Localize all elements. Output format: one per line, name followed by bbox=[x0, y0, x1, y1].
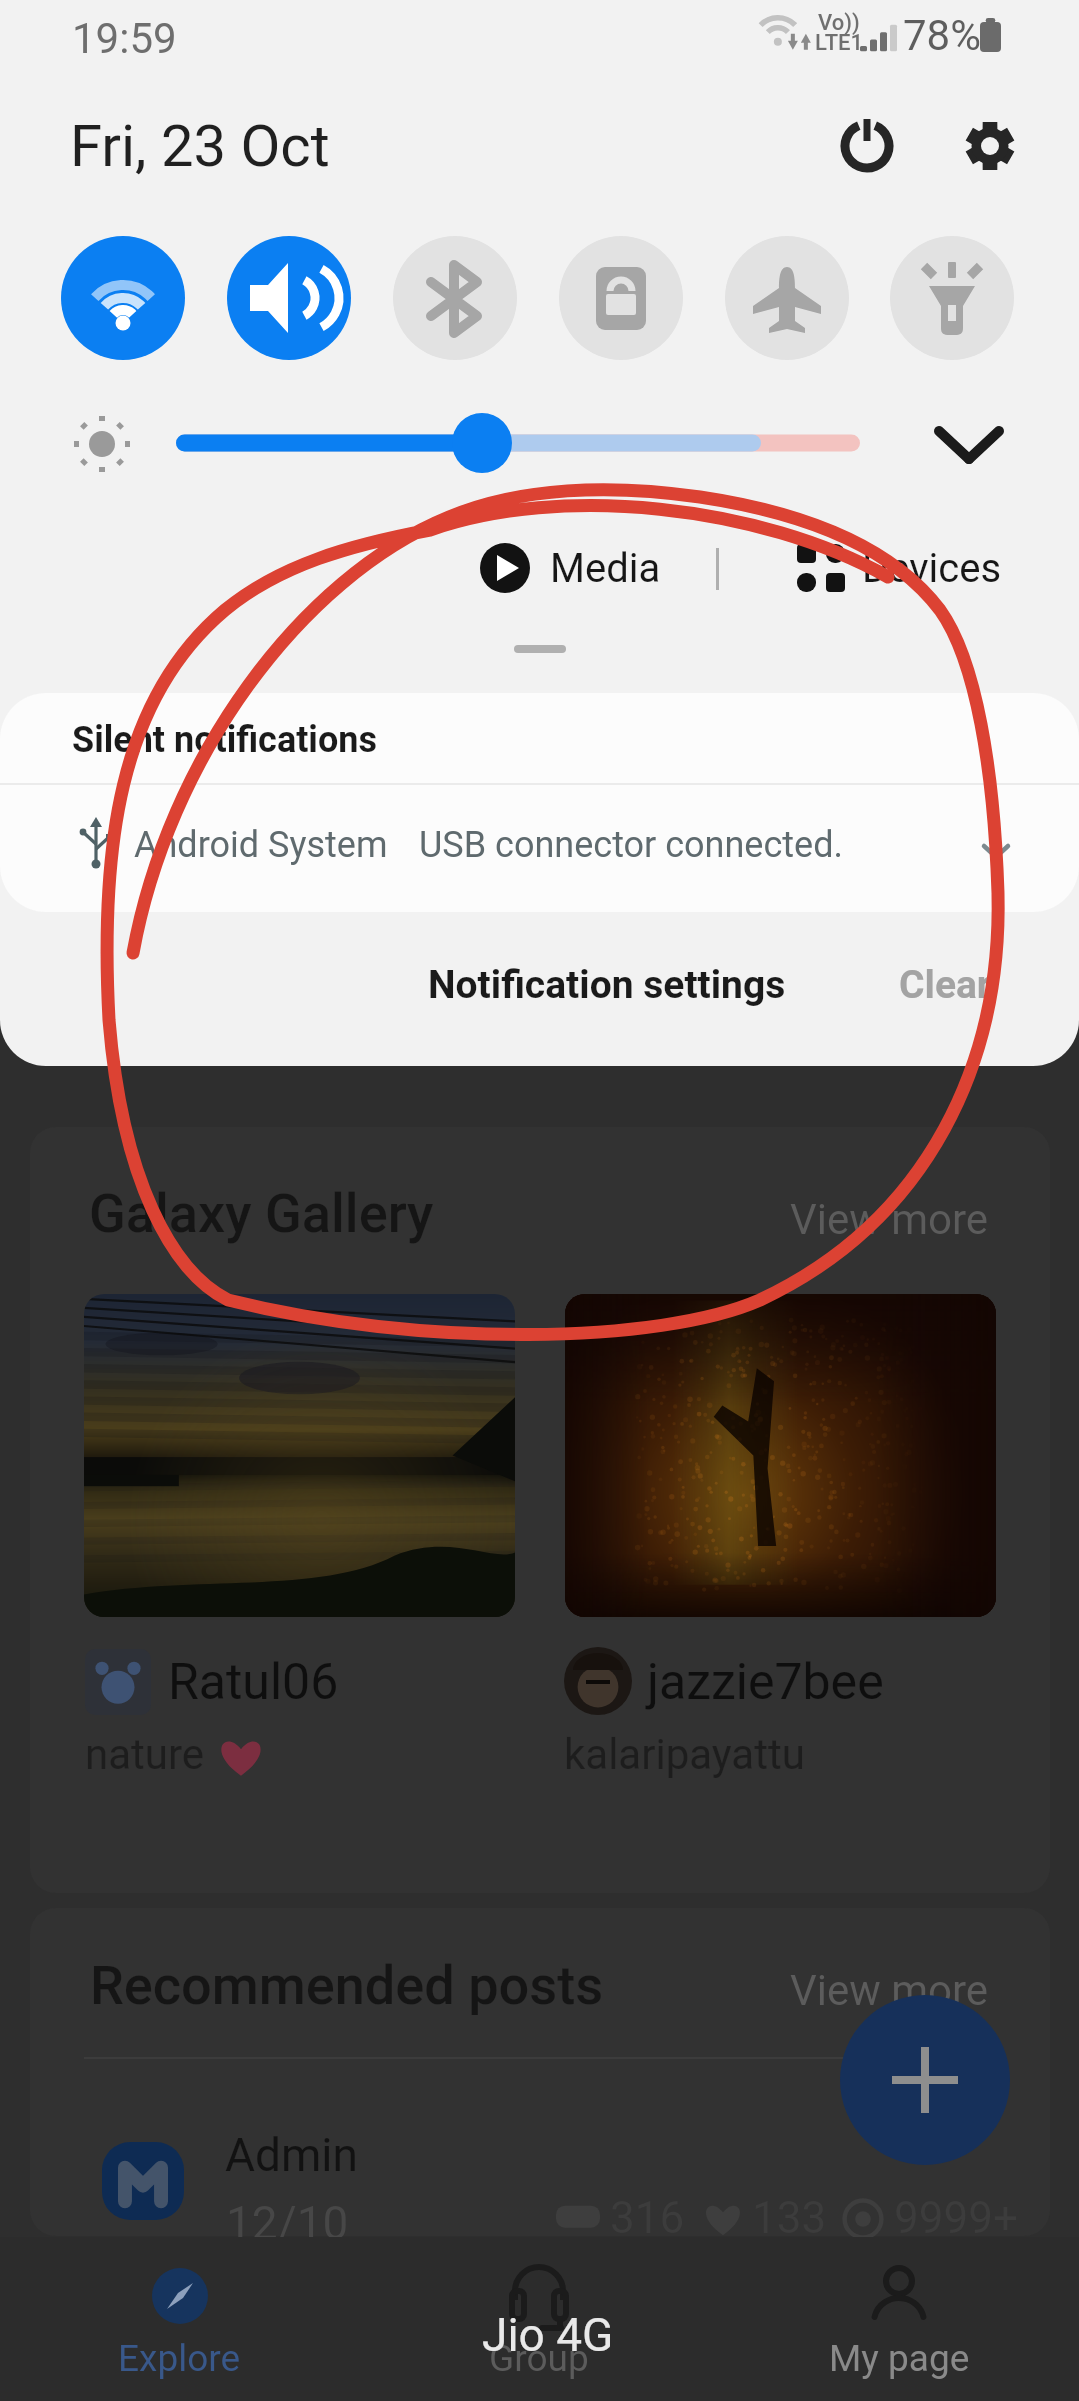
staticText: 19:59 bbox=[72, 14, 177, 63]
staticText: Clear bbox=[899, 962, 992, 1008]
button[interactable]: My page bbox=[719, 2237, 1079, 2401]
staticText: Group bbox=[489, 2337, 589, 2380]
button[interactable]: Secure lock bbox=[559, 236, 683, 360]
staticText: 78% bbox=[903, 11, 981, 60]
button[interactable]: Devices bbox=[790, 537, 1006, 599]
button[interactable]: Group bbox=[359, 2237, 719, 2401]
staticText: Explore bbox=[118, 2337, 241, 2380]
button[interactable]: Notification settings bbox=[412, 948, 802, 1022]
button[interactable]: Clear bbox=[883, 948, 1008, 1022]
staticText: 9999+ bbox=[894, 2192, 1018, 2244]
staticText: 316 bbox=[610, 2192, 685, 2244]
button[interactable]: Wi-Fi bbox=[61, 236, 185, 360]
button[interactable]: Airplane mode bbox=[725, 236, 849, 360]
button[interactable]: Brightness bbox=[452, 413, 512, 473]
button[interactable]: Bluetooth bbox=[393, 236, 517, 360]
button[interactable]: Explore bbox=[0, 2237, 359, 2401]
button[interactable]: Expand panel bbox=[925, 400, 1013, 488]
staticText: Vo)) bbox=[818, 10, 860, 36]
staticText: Notification settings bbox=[428, 962, 786, 1008]
staticText: Devices bbox=[862, 545, 1002, 592]
button[interactable]: Create post bbox=[840, 1995, 1010, 2165]
staticText: LTE1 bbox=[815, 30, 864, 56]
staticText: Silent notifications bbox=[72, 719, 377, 761]
staticText: Admin bbox=[225, 2128, 358, 2182]
staticText: USB connector connected. bbox=[419, 824, 843, 866]
button[interactable]: Settings bbox=[942, 98, 1038, 194]
staticText: 133 bbox=[752, 2192, 827, 2244]
staticText: Jio 4G bbox=[482, 2308, 614, 2362]
staticText: Recommended posts bbox=[90, 1954, 604, 2017]
staticText: View more bbox=[790, 1195, 989, 1244]
staticText: My page bbox=[829, 2337, 970, 2380]
staticText: 12/10 bbox=[226, 2196, 349, 2250]
staticText: Ratul06 bbox=[168, 1653, 339, 1712]
button[interactable]: Power off bbox=[819, 98, 915, 194]
staticText: kalaripayattu bbox=[564, 1730, 805, 1779]
staticText: Fri, 23 Oct bbox=[70, 112, 330, 180]
button[interactable]: Flashlight bbox=[890, 236, 1014, 360]
button[interactable]: Sound bbox=[227, 236, 351, 360]
staticText: Media bbox=[550, 545, 661, 592]
staticText: jazzie7bee bbox=[647, 1653, 884, 1712]
staticText: View more bbox=[790, 1966, 989, 2015]
button[interactable]: Media bbox=[474, 537, 665, 599]
staticText: Galaxy Gallery bbox=[89, 1182, 434, 1245]
button[interactable]: Silent notifications bbox=[0, 693, 1079, 912]
staticText: Android System bbox=[134, 824, 388, 866]
staticText: nature bbox=[85, 1730, 205, 1779]
